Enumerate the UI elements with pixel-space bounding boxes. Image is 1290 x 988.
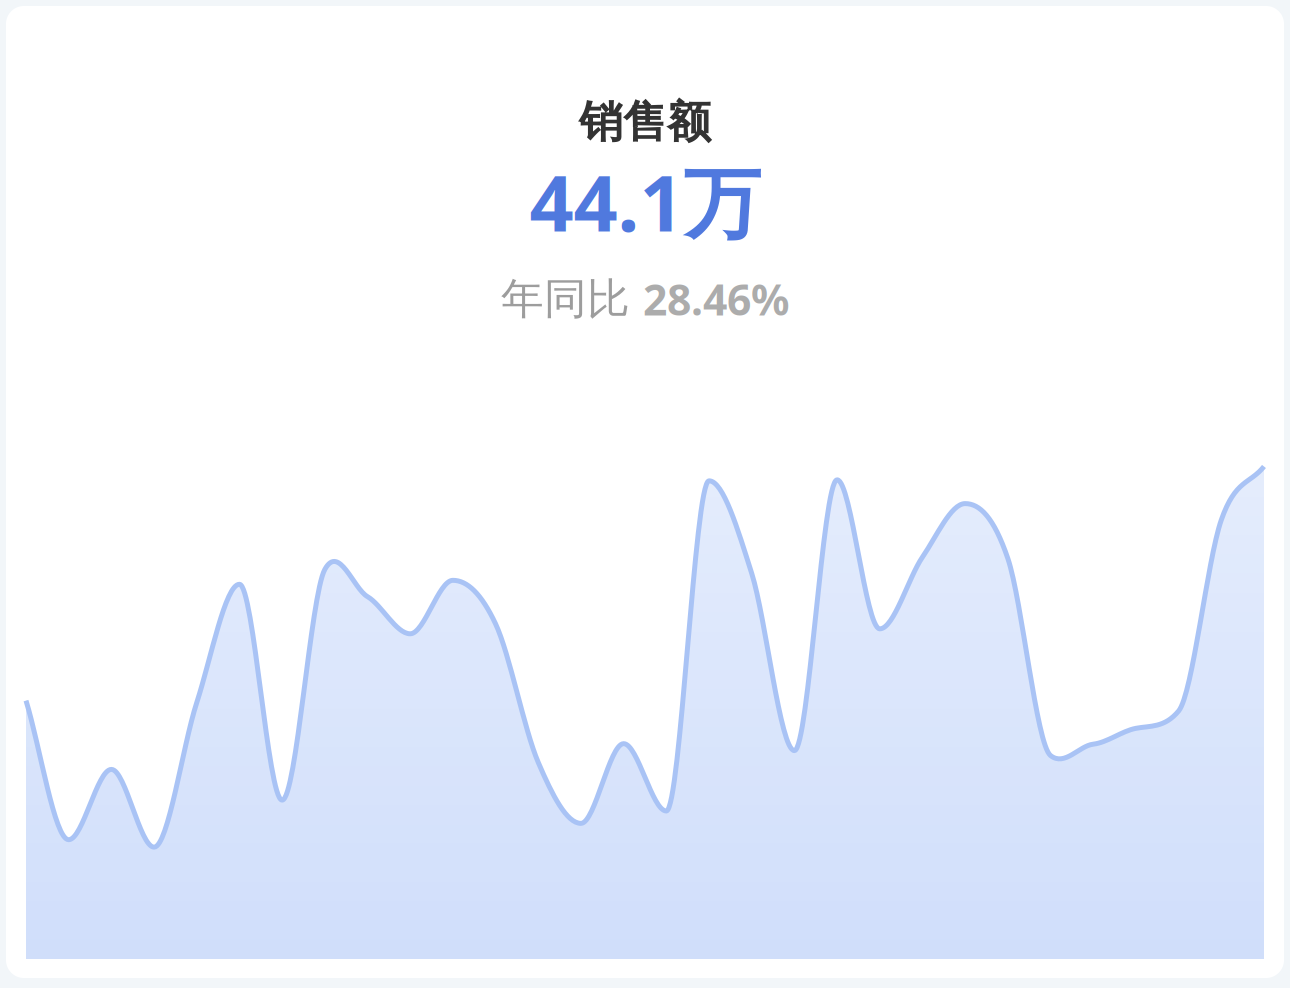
staticText: 44.1万 [529,150,760,253]
staticText: 28.46% [643,271,789,327]
button[interactable]: 销售额 [6,6,1284,978]
staticText: 销售额 [579,95,711,149]
staticText: 年同比 [501,273,643,325]
